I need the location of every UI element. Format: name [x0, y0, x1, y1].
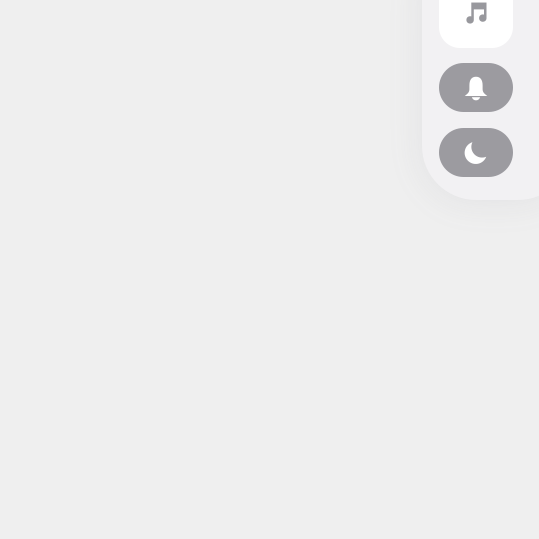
button[interactable]: Music — [439, 0, 513, 48]
button[interactable]: Notifications — [439, 63, 513, 112]
button[interactable]: Do Not Disturb — [439, 128, 513, 177]
